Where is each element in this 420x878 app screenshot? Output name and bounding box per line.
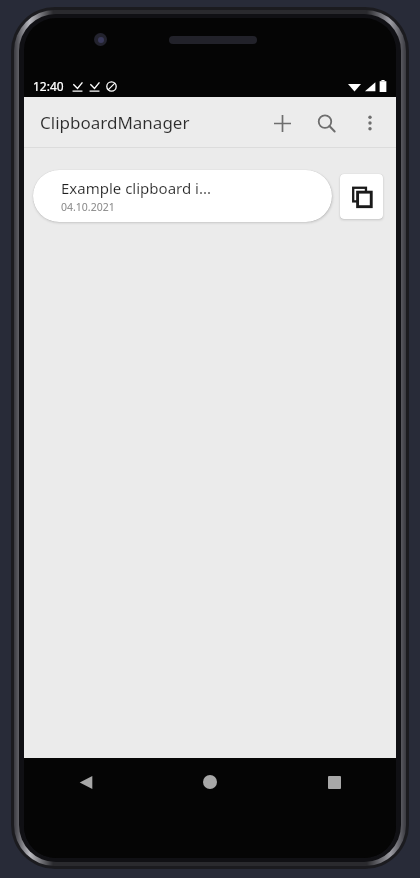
staticText: 04.10.2021	[61, 200, 115, 214]
button[interactable]: Add	[260, 101, 304, 145]
button[interactable]: Copy	[340, 174, 383, 219]
button[interactable]: Home	[148, 758, 272, 806]
button[interactable]: More options	[348, 101, 392, 145]
button[interactable]: Recent apps	[272, 758, 396, 806]
staticText: Example clipboard i...	[61, 178, 212, 198]
staticText: 12:40	[33, 78, 64, 94]
button[interactable]: Back	[24, 758, 148, 806]
button[interactable]: Example clipboard i...	[33, 170, 332, 222]
button[interactable]: Search	[304, 101, 348, 145]
staticText: ClipboardManager	[40, 111, 190, 134]
